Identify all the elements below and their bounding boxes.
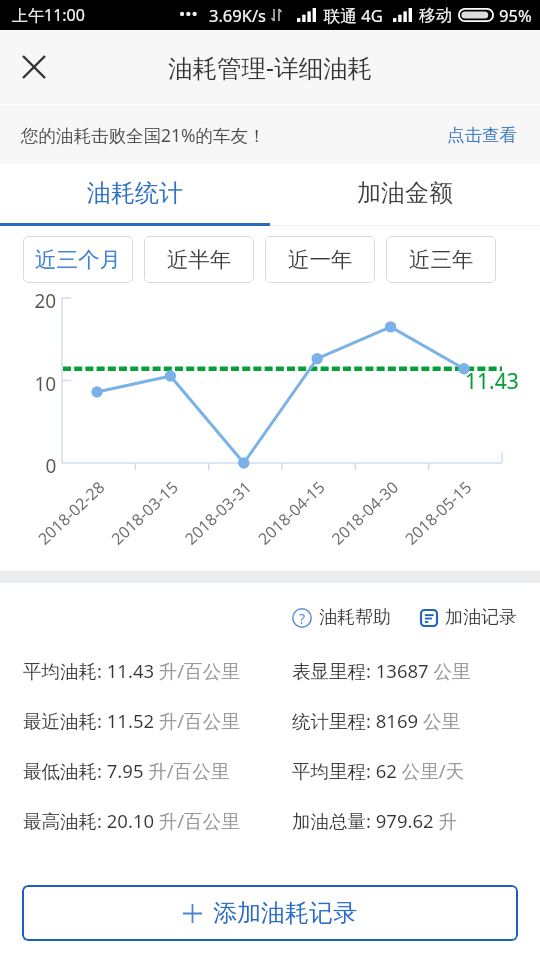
staticText: 近一年 [288,246,353,273]
staticText: 添加油耗记录 [213,898,357,928]
button[interactable]: 近三个月 [23,236,133,283]
staticText: 95% [499,4,532,26]
button[interactable]: 近三年 [386,236,496,283]
button[interactable]: 油耗统计 [0,164,270,226]
button[interactable]: 加油记录 [417,603,520,632]
staticText: 最高油耗: 20.10 升/百公里 [23,808,240,833]
button[interactable]: Close [12,45,56,89]
staticText: 近三年 [409,246,474,273]
staticText: 移动 [419,5,452,26]
button[interactable]: 加油金额 [270,164,540,226]
staticText: 点击查看 [447,124,517,146]
staticText: 加油记录 [445,606,517,629]
staticText: 联通 4G [324,4,383,27]
staticText: 油耗管理-详细油耗 [168,51,372,84]
staticText: 统计里程: 8169 公里 [292,708,460,733]
staticText: 您的油耗击败全国21%的车友！ [21,123,266,147]
staticText: ••• [179,2,198,24]
staticText: 3.69K/s [209,4,266,26]
button[interactable]: ? [289,603,394,632]
staticText: 油耗统计 [87,178,183,208]
staticText: 近三个月 [35,246,121,273]
staticText: 油耗帮助 [319,606,391,629]
staticText: 最低油耗: 7.95 升/百公里 [23,758,230,783]
staticText: ? [299,609,306,628]
staticText: 加油金额 [357,178,453,208]
button[interactable]: 近一年 [265,236,375,283]
button[interactable]: 近半年 [144,236,254,283]
button[interactable]: 点击查看 [447,124,517,146]
staticText: 平均里程: 62 公里/天 [292,758,465,783]
staticText: 平均油耗: 11.43 升/百公里 [23,658,240,683]
staticText: 表显里程: 13687 公里 [292,658,471,683]
button[interactable]: 添加油耗记录 [22,885,518,941]
staticText: 上午11:00 [12,4,85,26]
staticText: 近半年 [167,246,232,273]
staticText: 最近油耗: 11.52 升/百公里 [23,708,240,733]
staticText: 加油总量: 979.62 升 [292,808,457,833]
